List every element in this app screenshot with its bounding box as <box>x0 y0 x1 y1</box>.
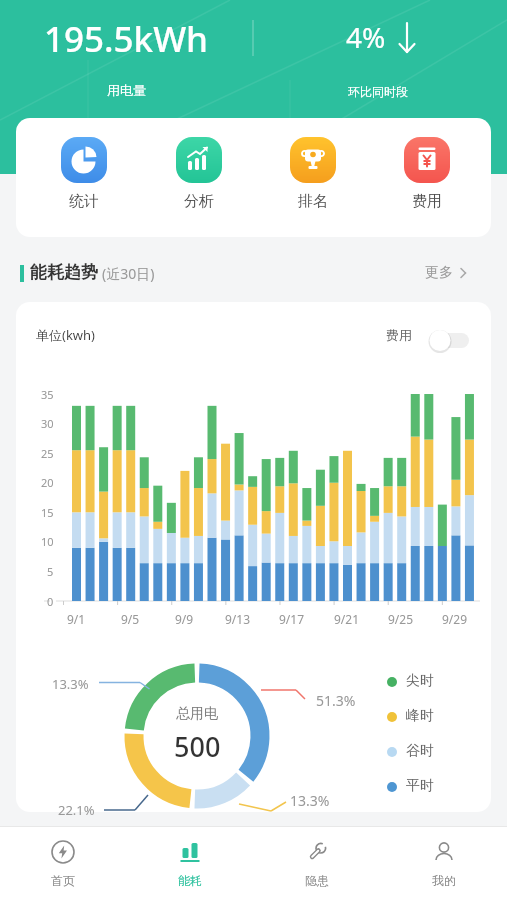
button[interactable]: 我的 <box>380 826 507 900</box>
staticText: 能耗 <box>178 873 202 888</box>
staticText: 单位(kwh) <box>36 326 95 344</box>
staticText: 13.3% <box>290 791 330 810</box>
button[interactable]: 首页 <box>0 826 126 900</box>
staticText: 15 <box>41 505 54 520</box>
staticText: 22.1% <box>58 801 95 819</box>
staticText: (近30日) <box>102 264 155 283</box>
staticText: 平时 <box>406 777 434 795</box>
staticText: 用电量 <box>107 82 146 98</box>
button[interactable]: 统计 <box>49 137 119 211</box>
button[interactable]: 隐患 <box>253 826 380 900</box>
staticText: 费用 <box>386 327 412 343</box>
staticText: 统计 <box>69 192 99 211</box>
button[interactable] <box>386 332 468 356</box>
button[interactable]: 费用 <box>392 137 462 211</box>
staticText: 9/17 <box>279 611 305 627</box>
staticText: 分析 <box>184 192 214 211</box>
staticText: 35 <box>41 387 54 402</box>
staticText: 13.3% <box>52 675 89 693</box>
staticText: 9/25 <box>388 611 414 627</box>
staticText: 能耗趋势 <box>30 262 98 283</box>
staticText: 9/9 <box>175 611 194 627</box>
staticText: 25 <box>41 446 54 461</box>
staticText: 隐患 <box>305 873 329 888</box>
staticText: 费用 <box>412 192 442 211</box>
staticText: 环比同时段 <box>348 84 408 99</box>
staticText: 30 <box>41 416 54 431</box>
staticText: 195.5kWh <box>44 15 209 59</box>
staticText: 500 <box>174 728 221 765</box>
staticText: 9/1 <box>67 611 86 627</box>
staticText: 5 <box>47 564 54 579</box>
staticText: 排名 <box>298 192 328 211</box>
staticText: 51.3% <box>316 691 356 710</box>
staticText: 9/13 <box>225 611 251 627</box>
staticText: 9/29 <box>442 611 468 627</box>
button[interactable]: 排名 <box>278 137 348 211</box>
staticText: 0 <box>47 594 54 609</box>
staticText: 我的 <box>432 873 456 888</box>
staticText: 峰时 <box>406 707 434 725</box>
staticText: 更多 <box>425 264 453 282</box>
button[interactable]: 分析 <box>164 137 234 211</box>
staticText: 9/5 <box>121 611 140 627</box>
staticText: 总用电 <box>176 705 218 723</box>
button[interactable]: 能耗 <box>126 826 253 900</box>
staticText: 首页 <box>51 873 75 888</box>
button[interactable]: 更多 <box>425 258 491 288</box>
staticText: 9/21 <box>334 611 360 627</box>
staticText: 4% <box>346 18 386 56</box>
staticText: 20 <box>41 475 54 490</box>
staticText: 尖时 <box>406 672 434 690</box>
staticText: 谷时 <box>406 742 434 760</box>
staticText: 10 <box>41 534 54 549</box>
